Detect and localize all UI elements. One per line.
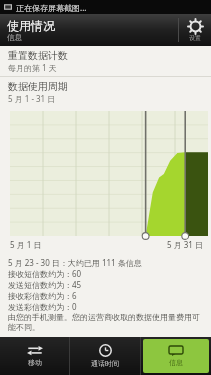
button[interactable]: 重置数据计数 — [0, 46, 211, 76]
staticText: 重置数据计数 — [8, 49, 68, 62]
staticText: 使用情况 — [7, 18, 55, 33]
staticText: 5 月 1 日 — [10, 239, 42, 250]
staticText: 移动 — [28, 358, 42, 367]
staticText: 信息 — [7, 33, 22, 42]
staticText: 5 月 1 - 31 日 — [8, 93, 56, 104]
button[interactable]: 通话时间 — [70, 337, 140, 375]
button[interactable]: 信息 — [143, 339, 209, 373]
button[interactable]: 数据使用周期 — [0, 77, 211, 107]
staticText: 接收短信数约为：60 — [8, 268, 82, 279]
staticText: 正在保存屏幕截图... — [16, 2, 87, 13]
staticText: 每月的第 1 天 — [8, 62, 57, 73]
button[interactable]: 移动 — [0, 337, 69, 375]
staticText: 发送彩信数约为：0 — [8, 301, 77, 312]
staticText: 5 月 31 日 — [167, 239, 203, 250]
staticText: 设置 — [189, 34, 201, 42]
staticText: 由您的手机测量。您的运营商收取的数据使用量费用可能不同。 — [8, 312, 205, 333]
staticText: 接收彩信数约为：6 — [8, 290, 77, 301]
staticText: 发送短信数约为：45 — [8, 279, 82, 290]
staticText: 数据使用周期 — [8, 80, 68, 93]
staticText: 通话时间 — [91, 359, 119, 368]
staticText: 信息 — [169, 358, 183, 367]
staticText: 5 月 23 - 30 日：大约已用 111 条信息 — [8, 257, 142, 268]
button[interactable]: 设置 — [179, 14, 211, 46]
